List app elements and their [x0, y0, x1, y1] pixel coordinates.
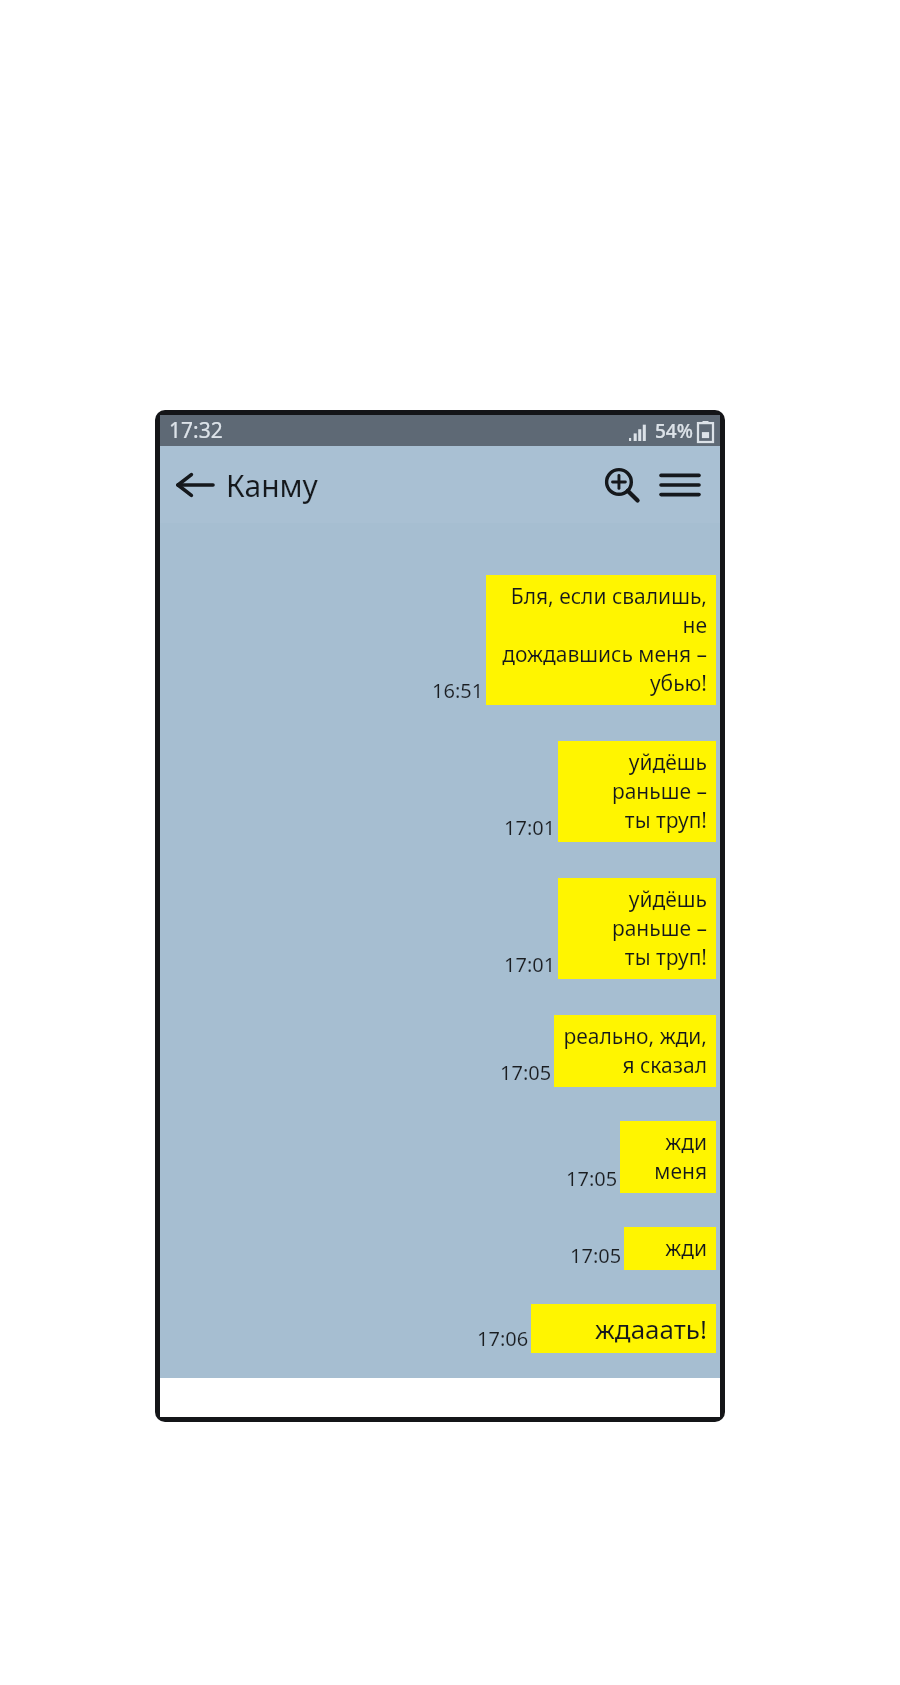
button[interactable]: 17:06 — [160, 1304, 716, 1353]
staticText: 17:05 — [566, 1165, 618, 1192]
staticText: я сказал — [622, 1051, 707, 1080]
staticText: Бля, если свалишь, не — [495, 582, 707, 640]
staticText: уйдёшь раньше – — [567, 748, 707, 806]
staticText: ждааать! — [595, 1311, 707, 1346]
button[interactable]: Канму — [226, 465, 318, 506]
staticText: уйдёшь раньше – — [567, 885, 707, 943]
staticText: 17:05 — [500, 1059, 552, 1086]
staticText: реально, жди, — [563, 1022, 707, 1051]
staticText: 17:32 — [169, 416, 223, 445]
button[interactable]: 17:01 — [160, 741, 716, 842]
staticText: 17:05 — [570, 1242, 622, 1269]
button[interactable]: 16:51 — [160, 575, 716, 705]
button[interactable]: Menu — [654, 459, 706, 511]
staticText: 17:01 — [504, 814, 556, 841]
staticText: 54% — [655, 418, 693, 444]
staticText: 16:51 — [432, 677, 484, 704]
button[interactable]: 17:01 — [160, 878, 716, 979]
staticText: 17:01 — [504, 951, 556, 978]
button[interactable]: Back — [172, 462, 218, 508]
staticText: жди меня — [629, 1128, 707, 1186]
button[interactable]: 17:05 — [160, 1121, 716, 1193]
button[interactable]: Zoom in — [596, 459, 648, 511]
button[interactable]: 17:05 — [160, 1227, 716, 1270]
staticText: 17:06 — [477, 1325, 529, 1352]
staticText: дождавшись меня – убью! — [495, 640, 707, 698]
staticText: жди — [665, 1234, 707, 1263]
staticText: ты труп! — [624, 943, 707, 972]
button[interactable]: 17:05 — [160, 1015, 716, 1087]
staticText: ты труп! — [624, 806, 707, 835]
